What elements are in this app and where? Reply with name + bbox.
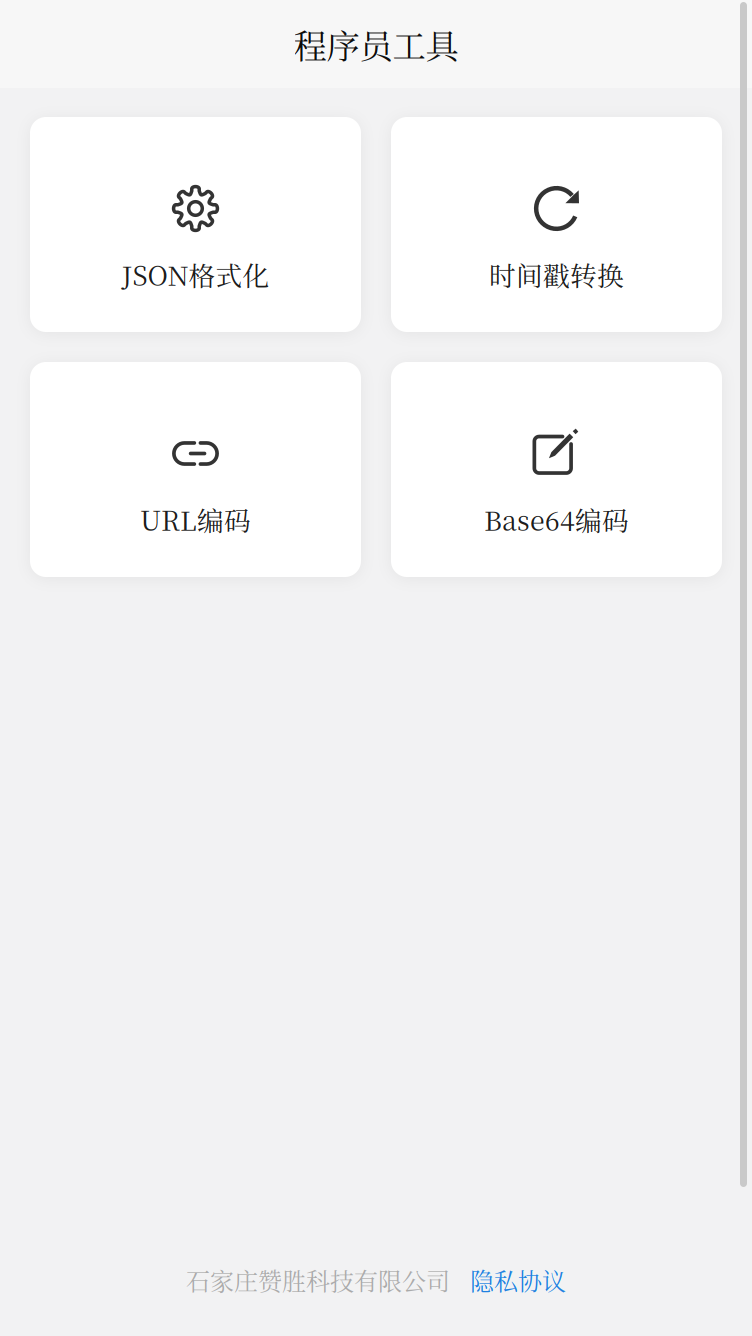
button[interactable]: 时间戳转换 [391,117,722,332]
staticText: 时间戳转换 [489,255,624,293]
button[interactable]: URL编码 [30,362,361,577]
staticText: 隐私协议 [470,1262,566,1297]
staticText: 石家庄赞胜科技有限公司 [186,1262,450,1297]
staticText: Base64编码 [484,500,629,538]
button[interactable]: JSON格式化 [30,117,361,332]
staticText: JSON格式化 [121,255,269,293]
staticText: URL编码 [140,500,251,538]
button[interactable]: Base64编码 [391,362,722,577]
staticText: 程序员工具 [293,20,458,68]
button[interactable]: 隐私协议 [470,1262,566,1297]
